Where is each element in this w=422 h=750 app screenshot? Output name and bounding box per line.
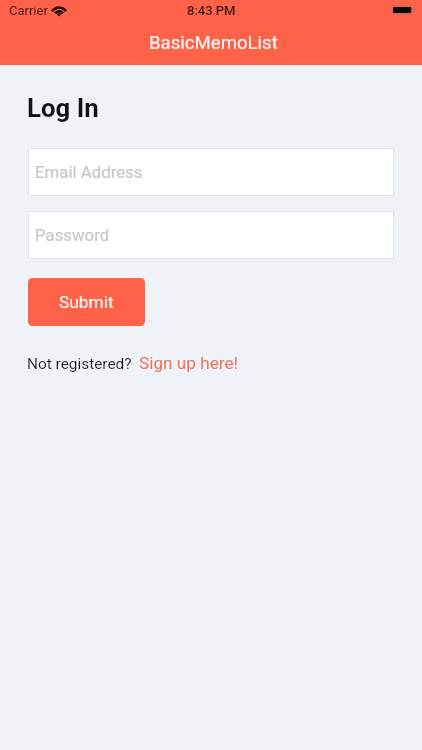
button[interactable]: Email Address — [28, 148, 394, 196]
staticText: Not registered? — [27, 355, 132, 373]
staticText: Email Address — [35, 162, 143, 182]
button[interactable]: Sign up here! — [139, 353, 238, 373]
staticText: Log In — [27, 93, 99, 123]
staticText: Password — [35, 225, 110, 245]
other: Battery full — [391, 5, 416, 15]
staticText: Sign up here! — [139, 353, 238, 373]
staticText: 8:43 PM — [187, 3, 236, 18]
staticText: Carrier — [9, 3, 48, 18]
other: Wi-Fi signal — [50, 1, 68, 14]
staticText: Submit — [59, 292, 114, 312]
button[interactable]: Password — [28, 211, 394, 259]
staticText: BasicMemoList — [149, 32, 278, 54]
button[interactable]: Submit — [28, 278, 145, 326]
